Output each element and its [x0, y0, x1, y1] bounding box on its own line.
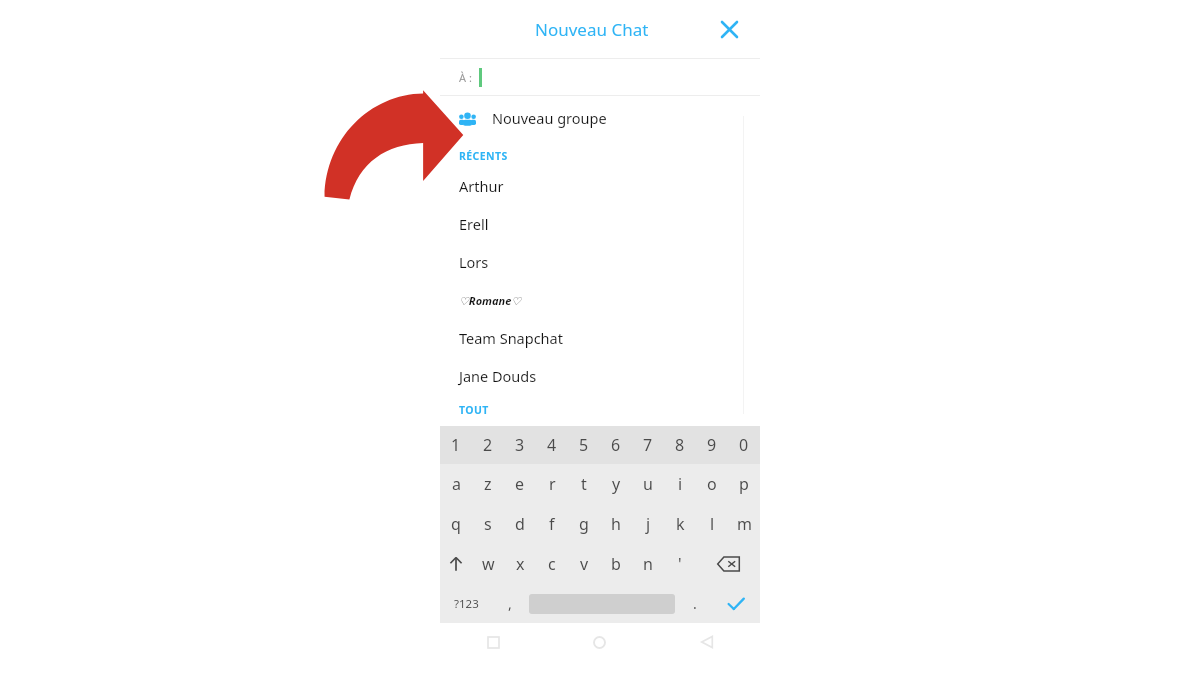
- button[interactable]: m: [728, 504, 760, 544]
- staticText: w: [482, 553, 495, 575]
- button[interactable]: Récents: [440, 623, 546, 661]
- button[interactable]: À :: [440, 59, 760, 95]
- staticText: m: [737, 513, 752, 535]
- staticText: ': [678, 553, 682, 575]
- staticText: z: [484, 473, 492, 495]
- button[interactable]: 0: [728, 426, 760, 464]
- button[interactable]: k: [664, 504, 696, 544]
- staticText: Arthur: [459, 176, 504, 196]
- staticText: 3: [515, 434, 525, 456]
- other: Valider: [726, 594, 746, 614]
- button[interactable]: a: [440, 464, 472, 504]
- staticText: c: [548, 553, 556, 575]
- staticText: 2: [483, 434, 493, 456]
- button[interactable]: Valider: [711, 584, 760, 623]
- button[interactable]: 1: [440, 426, 472, 464]
- staticText: 8: [675, 434, 685, 456]
- staticText: l: [710, 513, 715, 535]
- button[interactable]: i: [664, 464, 696, 504]
- button[interactable]: 6: [600, 426, 632, 464]
- button[interactable]: ': [664, 544, 696, 584]
- button[interactable]: f: [536, 504, 568, 544]
- staticText: o: [707, 473, 717, 495]
- other: Majuscule: [447, 555, 465, 573]
- button[interactable]: 9: [696, 426, 728, 464]
- staticText: i: [678, 473, 683, 495]
- staticText: 1: [451, 434, 461, 456]
- staticText: Lors: [459, 252, 489, 272]
- button[interactable]: Effacer: [696, 544, 760, 584]
- button[interactable]: Jane Douds: [440, 357, 760, 395]
- staticText: e: [515, 473, 525, 495]
- button[interactable]: w: [472, 544, 504, 584]
- button[interactable]: 7: [632, 426, 664, 464]
- staticText: Erell: [459, 214, 489, 234]
- button[interactable]: 8: [664, 426, 696, 464]
- button[interactable]: ♡Romane♡: [440, 281, 760, 319]
- staticText: x: [516, 553, 525, 575]
- button[interactable]: j: [632, 504, 664, 544]
- staticText: g: [579, 513, 589, 535]
- staticText: .: [693, 594, 697, 613]
- staticText: j: [646, 513, 651, 535]
- button[interactable]: u: [632, 464, 664, 504]
- button[interactable]: Fermer: [710, 10, 748, 48]
- button[interactable]: n: [632, 544, 664, 584]
- button[interactable]: Nouveau Chat: [527, 13, 657, 46]
- staticText: f: [549, 513, 555, 535]
- button[interactable]: x: [504, 544, 536, 584]
- button[interactable]: Lors: [440, 243, 760, 281]
- staticText: ,: [508, 594, 512, 613]
- button[interactable]: g: [568, 504, 600, 544]
- button[interactable]: c: [536, 544, 568, 584]
- staticText: v: [580, 553, 589, 575]
- button[interactable]: Arthur: [440, 167, 760, 205]
- staticText: ?123: [454, 596, 479, 612]
- button[interactable]: o: [696, 464, 728, 504]
- staticText: 4: [547, 434, 557, 456]
- button[interactable]: v: [568, 544, 600, 584]
- button[interactable]: b: [600, 544, 632, 584]
- button[interactable]: q: [440, 504, 472, 544]
- staticText: Team Snapchat: [459, 328, 563, 348]
- button[interactable]: 5: [568, 426, 600, 464]
- staticText: d: [515, 513, 525, 535]
- button[interactable]: s: [472, 504, 504, 544]
- other: Effacer: [717, 556, 740, 572]
- staticText: a: [452, 473, 461, 495]
- button[interactable]: 3: [504, 426, 536, 464]
- button[interactable]: Erell: [440, 205, 760, 243]
- staticText: r: [549, 473, 556, 495]
- button[interactable]: t: [568, 464, 600, 504]
- staticText: k: [676, 513, 685, 535]
- staticText: p: [739, 473, 749, 495]
- button[interactable]: Team Snapchat: [440, 319, 760, 357]
- button[interactable]: y: [600, 464, 632, 504]
- staticText: Nouveau Chat: [535, 18, 649, 41]
- staticText: 7: [643, 434, 653, 456]
- button[interactable]: .: [678, 584, 711, 623]
- staticText: t: [581, 473, 587, 495]
- button[interactable]: 2: [472, 426, 504, 464]
- staticText: 5: [579, 434, 589, 456]
- button[interactable]: z: [472, 464, 504, 504]
- button[interactable]: Majuscule: [440, 544, 472, 584]
- button[interactable]: e: [504, 464, 536, 504]
- staticText: q: [451, 513, 461, 535]
- button[interactable]: ,: [493, 584, 526, 623]
- staticText: n: [643, 553, 653, 575]
- staticText: b: [611, 553, 621, 575]
- button[interactable]: h: [600, 504, 632, 544]
- button[interactable]: 4: [536, 426, 568, 464]
- button[interactable]: r: [536, 464, 568, 504]
- button[interactable]: Nouveau groupe: [440, 96, 760, 140]
- staticText: Jane Douds: [459, 366, 537, 386]
- button[interactable]: d: [504, 504, 536, 544]
- button[interactable]: l: [696, 504, 728, 544]
- button[interactable]: p: [728, 464, 760, 504]
- staticText: u: [643, 473, 653, 495]
- button[interactable]: ?123: [440, 584, 493, 623]
